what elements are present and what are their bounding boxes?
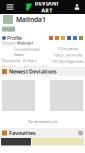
button[interactable]: Tool: [73, 36, 77, 40]
button[interactable]: Tool: [55, 36, 59, 40]
staticText: 0 Deviations: [57, 46, 78, 51]
button[interactable]: Account: [69, 0, 85, 14]
button[interactable]: Tool: [61, 36, 65, 40]
staticText: DEVIANT: [35, 0, 59, 7]
staticText: 1083 Comments: [53, 52, 82, 58]
staticText: No deviations yet: [28, 119, 57, 124]
staticText: Deviant for 10 Years: [2, 58, 37, 63]
staticText: Watch: [2, 22, 14, 36]
button[interactable]: DEVIANT: [26, 0, 59, 14]
button[interactable]: Profile: [2, 34, 22, 42]
staticText: Profile: [7, 34, 22, 42]
staticText: Newest Deviations: [9, 68, 57, 75]
staticText: Malinda1: [17, 40, 33, 45]
button[interactable]: Watch: [2, 26, 15, 32]
staticText: Malinda1: [16, 15, 46, 24]
staticText: Female/United States: [14, 46, 39, 57]
staticText: Deviant: [2, 40, 15, 45]
staticText: Favourites: [9, 129, 36, 137]
button[interactable]: Menu: [0, 0, 16, 14]
button[interactable]: Tool: [79, 36, 83, 40]
button[interactable]: Tool: [67, 36, 71, 40]
staticText: ART: [41, 7, 52, 14]
button[interactable]: Close: [78, 130, 83, 135]
staticText: Needs Core Membership: [2, 64, 47, 70]
staticText: 101,683 Pageviews: [52, 59, 84, 64]
button[interactable]: Tool: [49, 36, 53, 40]
